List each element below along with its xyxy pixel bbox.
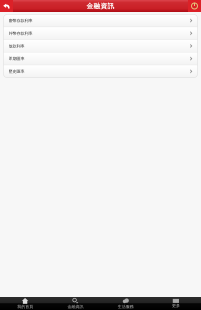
staticText: 放款利率	[8, 44, 24, 48]
button[interactable]: 即期匯率	[3, 53, 197, 65]
button[interactable]: Log out	[188, 0, 201, 12]
button[interactable]: 歷史匯率	[3, 65, 197, 78]
staticText: 外幣存款利率	[8, 31, 32, 36]
staticText: 金融資訊	[86, 2, 114, 10]
staticText: 臺幣存款利率	[8, 18, 32, 23]
staticText: 歷史匯率	[8, 69, 24, 74]
button[interactable]: 金融資訊	[50, 297, 100, 310]
staticText: 生活服務	[118, 304, 134, 309]
button[interactable]: 放款利率	[3, 40, 197, 52]
staticText: 更多	[172, 303, 180, 308]
button[interactable]: 生活服務	[100, 297, 151, 310]
button[interactable]: Back	[0, 0, 13, 12]
button[interactable]: 更多	[151, 297, 201, 310]
staticText: 金融資訊	[67, 304, 83, 309]
button[interactable]: 外幣存款利率	[3, 27, 197, 39]
button[interactable]: 我的首頁	[0, 297, 50, 310]
button[interactable]: 臺幣存款利率	[3, 14, 197, 27]
staticText: 即期匯率	[8, 56, 24, 61]
staticText: 我的首頁	[17, 304, 33, 309]
